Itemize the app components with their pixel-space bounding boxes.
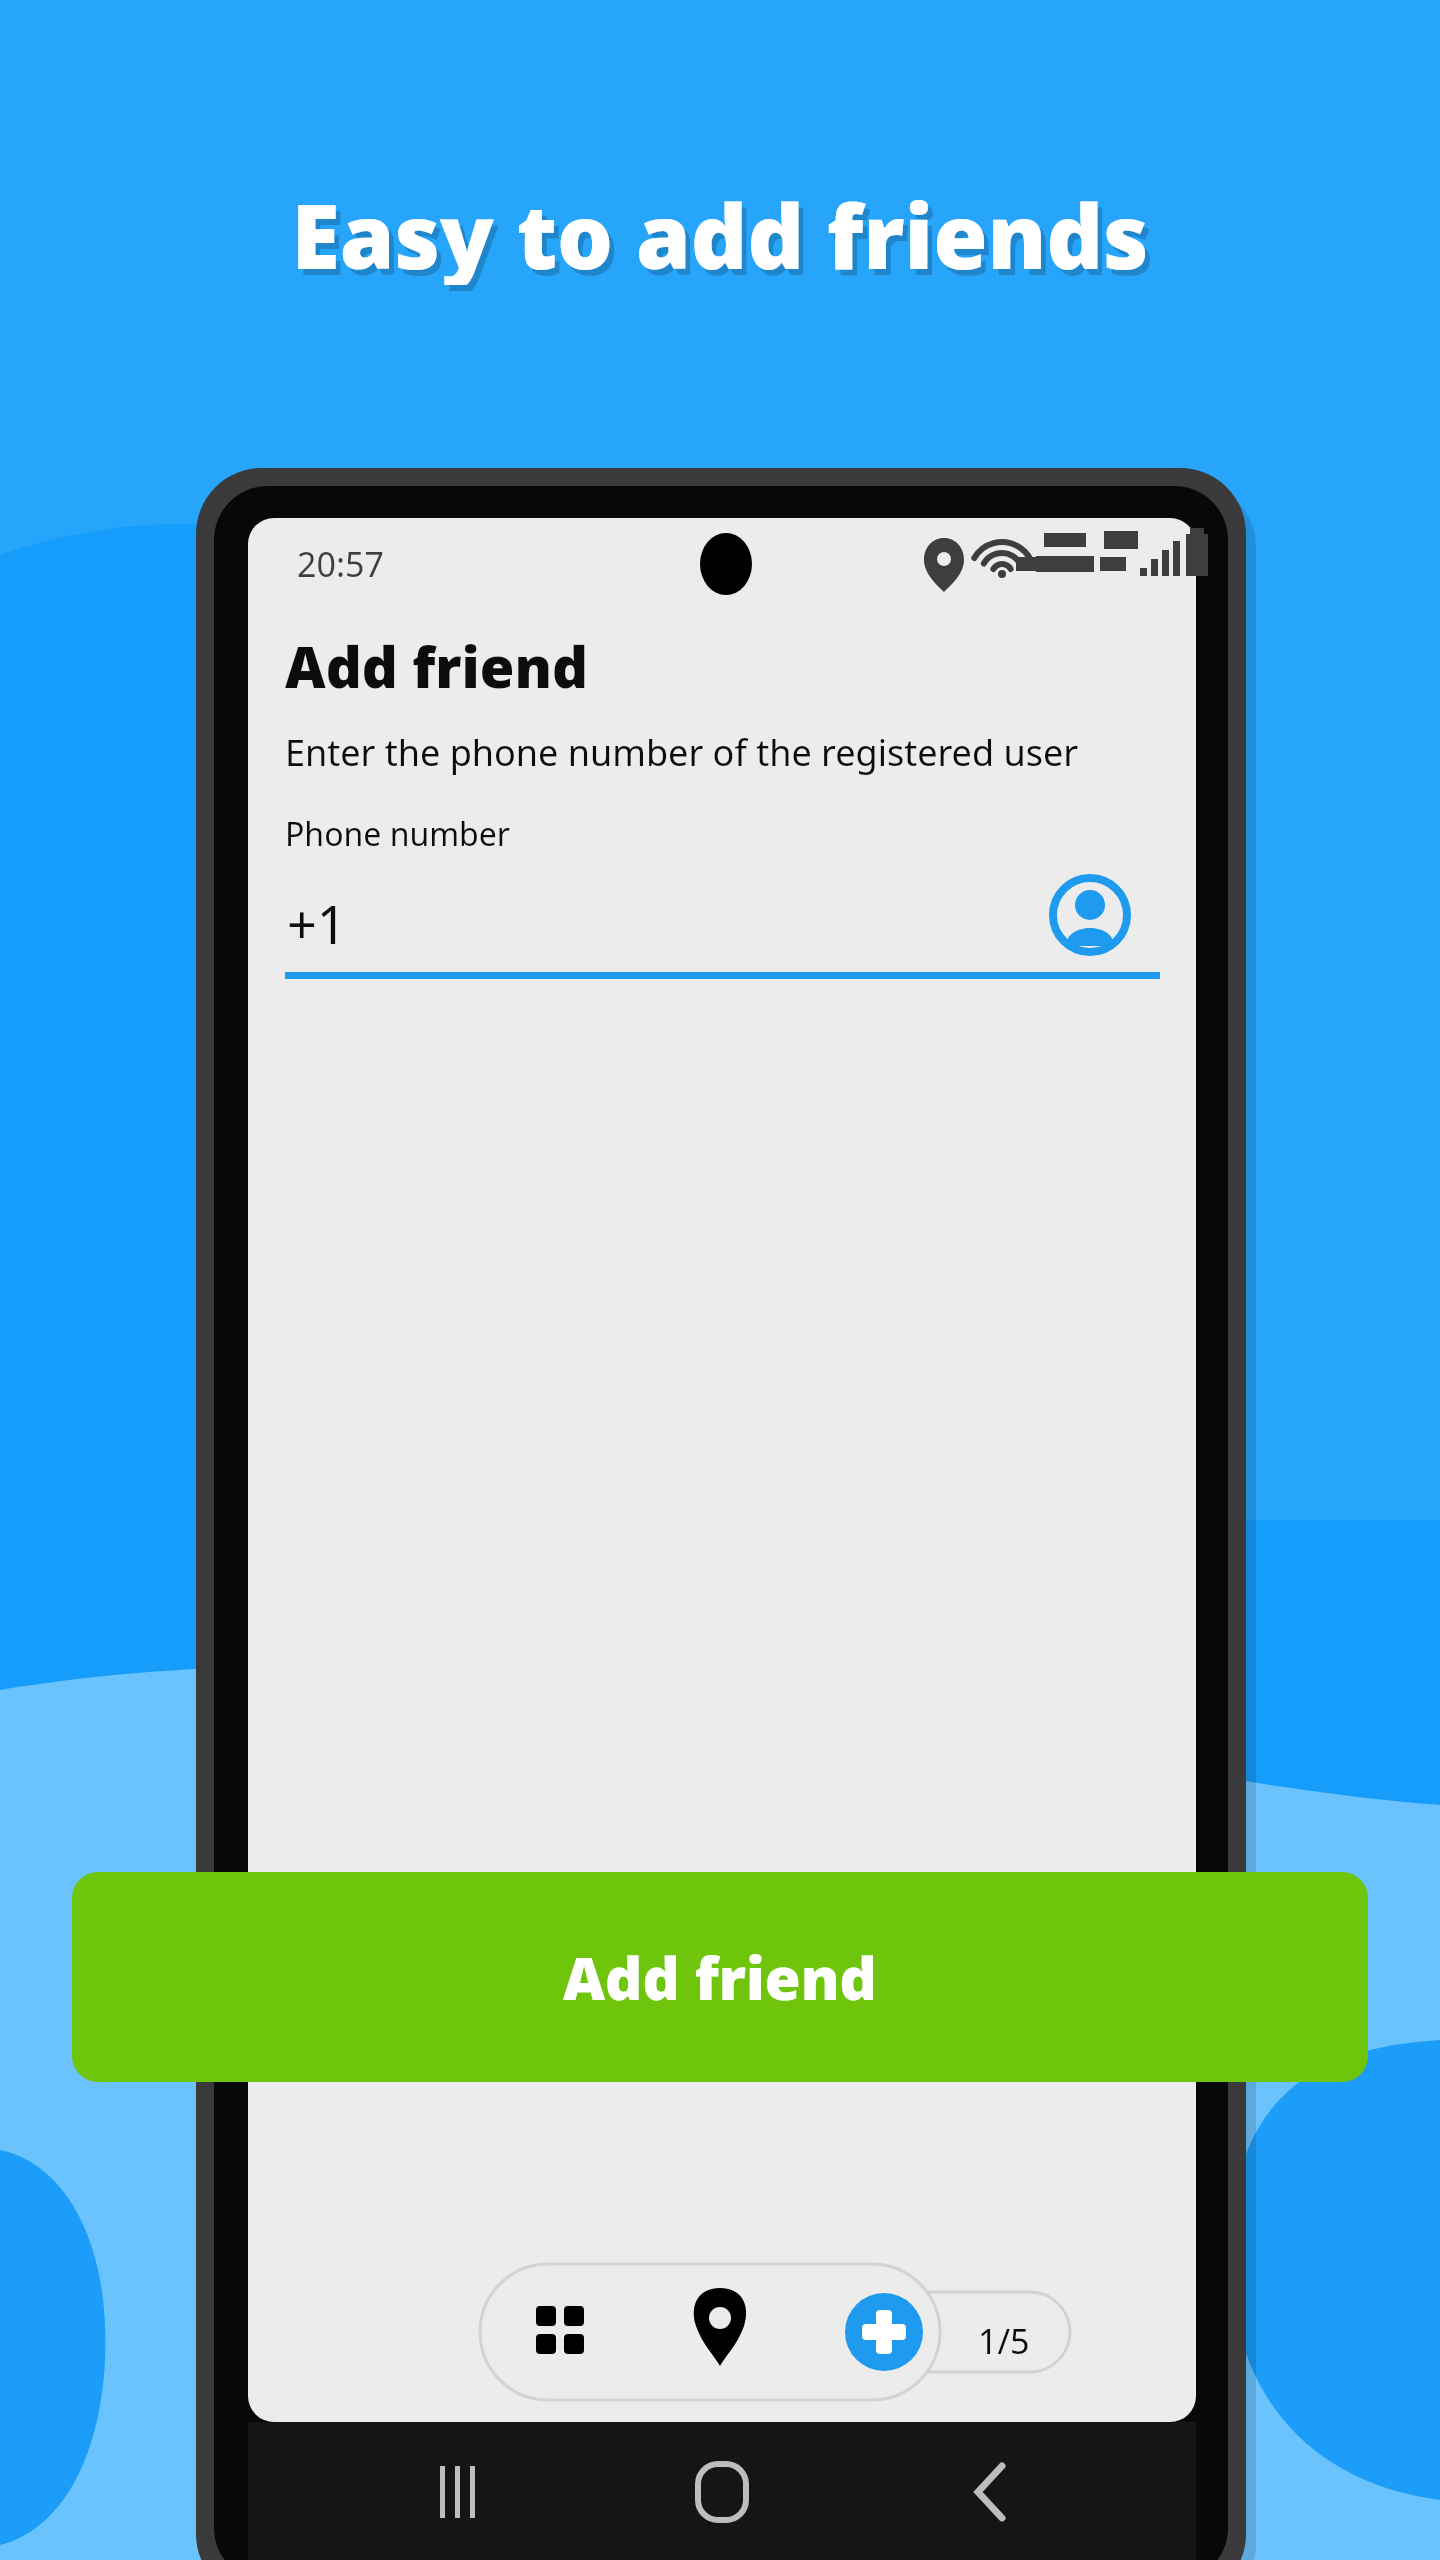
staticText: 1/5 [978, 2318, 1030, 2364]
staticText: Enter the phone number of the registered… [285, 728, 1079, 777]
staticText: 20:57 [297, 541, 384, 587]
staticText: Phone number [285, 812, 511, 856]
button[interactable]: Grid [500, 2278, 596, 2374]
staticText: +1 [287, 888, 347, 959]
button[interactable]: Add [840, 2278, 936, 2374]
button[interactable]: Home [657, 2440, 787, 2550]
button[interactable]: Map [672, 2278, 768, 2374]
staticText: Add friend [285, 628, 588, 704]
button[interactable]: Back [925, 2440, 1055, 2550]
button[interactable]: Add friend [72, 1872, 1368, 2082]
button[interactable]: Recents [390, 2440, 520, 2550]
staticText: Easy to add friends [296, 181, 1154, 291]
staticText: Add friend [563, 1938, 877, 2017]
staticText: Easy to add friends [291, 175, 1149, 285]
button[interactable]: Pick contact [1052, 877, 1128, 953]
